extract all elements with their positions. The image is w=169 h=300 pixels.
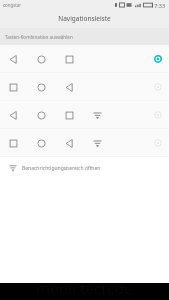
button[interactable]: Auswählen (151, 52, 165, 66)
button[interactable]: Auswählen (0, 101, 169, 129)
staticText: congstar (3, 2, 22, 8)
button[interactable]: Auswählen (151, 108, 165, 122)
staticText: 17:33 (151, 2, 166, 9)
staticText: Tasten-Kombination auswählen (5, 34, 73, 40)
button[interactable]: Auswählen (0, 73, 169, 101)
staticText: Benachrichtigungsbereich öffnen (22, 165, 101, 172)
button[interactable]: Auswählen (0, 45, 169, 73)
button[interactable]: Auswählen (151, 80, 165, 94)
staticText: Navigationsleiste (58, 14, 111, 23)
button[interactable]: Auswählen (0, 129, 169, 157)
button[interactable]: Auswählen (151, 136, 165, 150)
staticText: mobil.tech.de (36, 278, 133, 295)
